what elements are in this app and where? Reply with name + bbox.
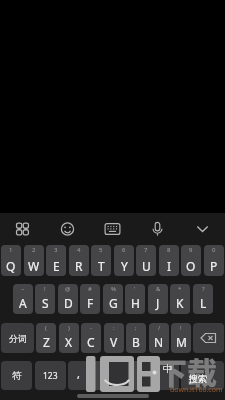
button[interactable]: 7 xyxy=(136,245,156,276)
staticText: ! xyxy=(44,285,46,293)
button[interactable]: ' xyxy=(125,284,145,314)
staticText: & xyxy=(156,285,161,293)
staticText: 2 xyxy=(32,246,36,254)
staticText: Y xyxy=(121,258,128,274)
staticText: H xyxy=(131,295,140,311)
staticText: 中 xyxy=(163,363,173,375)
button[interactable]: & xyxy=(148,284,168,314)
staticText: 5 xyxy=(99,246,103,254)
staticText: E xyxy=(53,258,60,274)
button[interactable]: 4 xyxy=(69,245,89,276)
staticText: ) xyxy=(68,324,70,332)
button[interactable]: 0 xyxy=(204,245,224,276)
staticText: ? xyxy=(202,285,205,293)
staticText: 7 xyxy=(144,246,148,254)
button[interactable] xyxy=(135,213,180,245)
staticText: 0 xyxy=(212,246,216,254)
staticText: G xyxy=(109,295,118,311)
staticText: R xyxy=(75,258,83,274)
button[interactable]: 1 xyxy=(1,245,21,276)
button[interactable] xyxy=(45,213,90,245)
staticText: C xyxy=(87,334,95,350)
button[interactable]: ! xyxy=(35,284,55,314)
staticText: L xyxy=(200,295,207,311)
staticText: A xyxy=(19,295,27,311)
button[interactable]: ! xyxy=(171,323,191,353)
staticText: 4 xyxy=(77,246,81,254)
staticText: down.it168.com xyxy=(170,385,223,395)
staticText: ! xyxy=(180,324,182,332)
staticText: B xyxy=(132,334,140,350)
staticText: ( xyxy=(45,324,47,332)
button[interactable]: # xyxy=(80,284,100,314)
staticText: 下载 xyxy=(157,349,217,392)
staticText: I xyxy=(167,258,172,274)
staticText: 8 xyxy=(167,246,171,254)
button[interactable] xyxy=(148,361,179,390)
button[interactable]: ( xyxy=(36,323,56,353)
staticText: 符 xyxy=(12,370,22,382)
button[interactable]: @ xyxy=(58,284,78,314)
staticText: V xyxy=(110,334,118,350)
staticText: 分词 xyxy=(9,333,27,344)
button[interactable] xyxy=(181,361,224,390)
staticText: Q xyxy=(6,258,16,274)
staticText: K xyxy=(176,295,184,311)
staticText: 123 xyxy=(43,370,58,382)
staticText: D xyxy=(64,295,73,311)
staticText: F xyxy=(87,295,94,311)
button[interactable]: 符 xyxy=(1,361,32,390)
staticText: - xyxy=(90,324,92,332)
button[interactable]: 5 xyxy=(91,245,111,276)
button[interactable]: - xyxy=(81,323,101,353)
staticText: ; xyxy=(135,324,137,332)
staticText: T xyxy=(98,258,105,274)
button[interactable]: 9 xyxy=(181,245,201,276)
staticText: , xyxy=(77,366,80,381)
staticText: / xyxy=(158,324,161,332)
staticText: Z xyxy=(43,334,50,350)
staticText: # xyxy=(88,285,92,293)
button[interactable]: / xyxy=(149,323,169,353)
staticText: M xyxy=(176,334,187,350)
staticText: W xyxy=(28,258,40,274)
button[interactable]: ) xyxy=(59,323,79,353)
button[interactable] xyxy=(90,213,135,245)
staticText: 9 xyxy=(189,246,193,254)
staticText: U xyxy=(142,258,151,274)
button[interactable]: 8 xyxy=(159,245,179,276)
button[interactable]: ~ xyxy=(13,284,33,314)
button[interactable]: 2 xyxy=(24,245,44,276)
button[interactable]: ? xyxy=(193,284,213,314)
staticText: 3 xyxy=(54,246,58,254)
staticText: O xyxy=(186,258,196,274)
button[interactable]: % xyxy=(103,284,123,314)
staticText: 1 xyxy=(9,246,13,254)
button[interactable] xyxy=(180,213,225,245)
staticText: @ xyxy=(65,285,71,293)
button[interactable]: , xyxy=(68,361,89,390)
staticText: 搜索 xyxy=(189,373,207,384)
button[interactable]: 分词 xyxy=(1,323,34,353)
staticText: % xyxy=(111,285,116,293)
button[interactable]: ; xyxy=(126,323,146,353)
button[interactable]: 123 xyxy=(35,361,66,390)
staticText: N xyxy=(154,334,164,350)
button[interactable] xyxy=(0,213,45,245)
staticText: 6 xyxy=(122,246,126,254)
staticText: J xyxy=(156,295,160,311)
button[interactable]: : xyxy=(104,323,124,353)
button[interactable] xyxy=(91,361,146,390)
button[interactable]: 6 xyxy=(114,245,134,276)
staticText: ' xyxy=(134,285,136,293)
button[interactable]: 3 xyxy=(46,245,66,276)
button[interactable]: * xyxy=(170,284,190,314)
staticText: : xyxy=(113,324,115,332)
staticText: S xyxy=(42,295,49,311)
staticText: * xyxy=(178,285,182,293)
staticText: P xyxy=(210,258,218,274)
button[interactable] xyxy=(193,323,224,353)
staticText: ~ xyxy=(21,285,25,293)
staticText: X xyxy=(65,334,73,350)
